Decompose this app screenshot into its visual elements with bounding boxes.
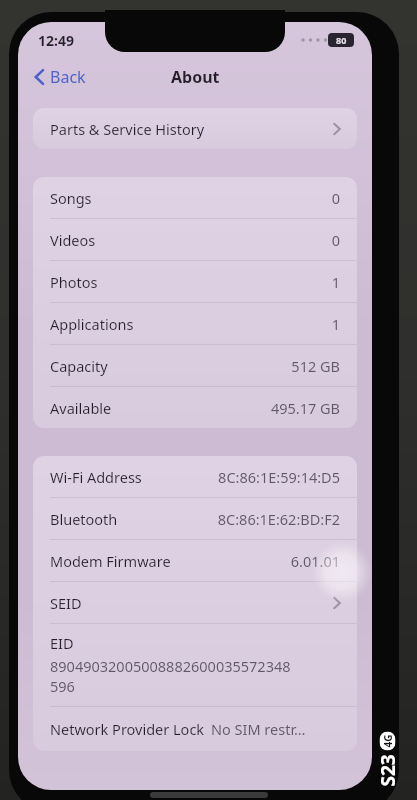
button[interactable]: Bluetooth	[33, 498, 357, 539]
button[interactable]: Wi-Fi Address	[33, 456, 357, 497]
staticText: 4G	[380, 734, 394, 747]
button[interactable]: Songs	[33, 177, 357, 218]
button[interactable]: Applications	[33, 303, 357, 344]
staticText: Videos	[50, 230, 96, 250]
staticText: Network Provider Lock	[50, 719, 205, 739]
staticText: 8C:86:1E:62:BD:F2	[217, 509, 340, 529]
button[interactable]: Back	[28, 62, 92, 92]
button[interactable]: Capacity	[33, 345, 357, 386]
staticText: 512 GB	[291, 356, 340, 376]
button[interactable]: Available	[33, 387, 357, 428]
staticText: EID	[50, 633, 74, 653]
staticText: 495.17 GB	[270, 398, 340, 418]
staticText: No SIM restr…	[211, 719, 306, 739]
button[interactable]: EID	[33, 624, 357, 706]
staticText: Songs	[50, 188, 92, 208]
staticText: Applications	[50, 314, 134, 334]
staticText: About	[171, 66, 220, 88]
other: Open Parts & Service History	[333, 122, 341, 136]
staticText: Modem Firmware	[50, 551, 171, 571]
staticText: SEID	[50, 593, 82, 613]
staticText: Back	[50, 66, 86, 88]
staticText: 1	[331, 272, 340, 292]
button[interactable]: Videos	[33, 219, 357, 260]
staticText: 80	[336, 34, 347, 46]
staticText: 89049032005008882600035572348	[50, 656, 291, 676]
button[interactable]: Network Provider Lock	[33, 707, 357, 751]
button[interactable]: Modem Firmware	[33, 540, 357, 581]
staticText: 596	[50, 676, 75, 696]
staticText: 1	[331, 314, 340, 334]
staticText: Wi-Fi Address	[50, 467, 142, 487]
staticText: 8C:86:1E:59:14:D5	[218, 467, 340, 487]
staticText: Parts & Service History	[50, 119, 205, 139]
staticText: S23	[374, 753, 400, 786]
staticText: 0	[331, 188, 340, 208]
button[interactable]: Photos	[33, 261, 357, 302]
staticText: 0	[331, 230, 340, 250]
button[interactable]: Parts & Service History	[33, 108, 357, 149]
staticText: Capacity	[50, 356, 108, 376]
staticText: 6.01.01	[290, 551, 340, 571]
staticText: Bluetooth	[50, 509, 118, 529]
staticText: Photos	[50, 272, 98, 292]
staticText: 12:49	[38, 31, 74, 50]
other: Open SEID	[333, 596, 341, 610]
staticText: Available	[50, 398, 112, 418]
button[interactable]: SEID	[33, 582, 357, 623]
